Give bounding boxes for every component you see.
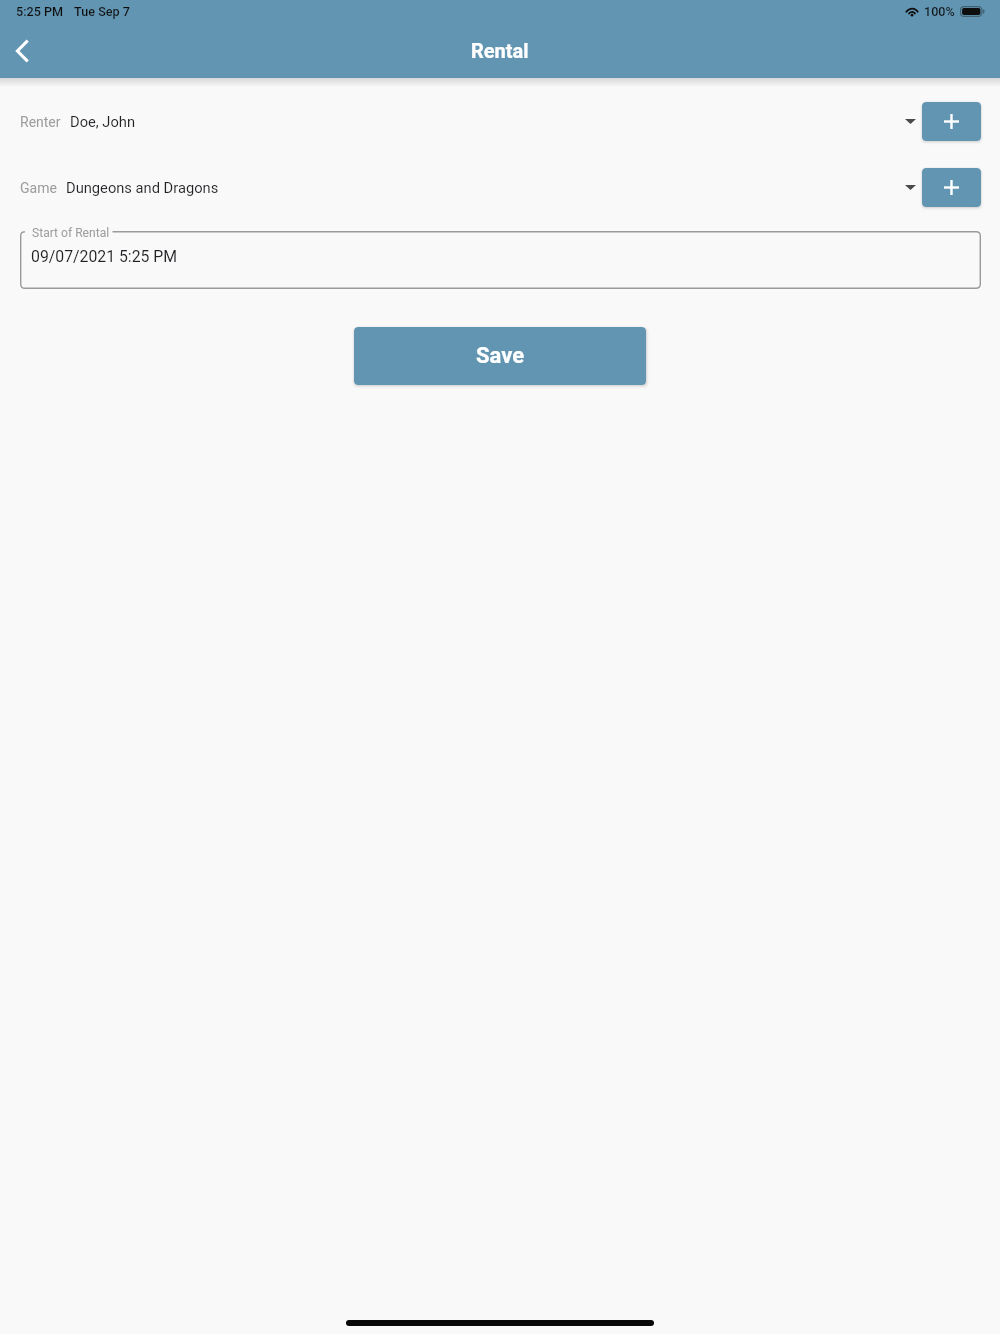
- staticText: Dungeons and Dragons: [66, 179, 219, 196]
- staticText: Start of Rental: [32, 226, 110, 240]
- staticText: Game: [20, 180, 57, 196]
- button[interactable]: Add: [922, 102, 981, 141]
- staticText: Renter: [20, 114, 61, 130]
- staticText: 5:25 PM: [16, 4, 64, 19]
- staticText: 100%: [924, 4, 955, 19]
- staticText: Tue Sep 7: [74, 4, 130, 19]
- staticText: Rental: [471, 39, 529, 62]
- button[interactable]: Back: [0, 27, 46, 75]
- button[interactable]: Add: [922, 168, 981, 207]
- button[interactable]: Save: [354, 327, 646, 385]
- staticText: Save: [476, 343, 525, 369]
- staticText: Doe, John: [70, 113, 136, 130]
- staticText: 09/07/2021 5:25 PM: [31, 247, 178, 266]
